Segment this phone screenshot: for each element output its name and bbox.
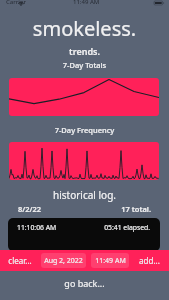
staticText: 8/2/22: [18, 204, 42, 214]
staticText: 11:49 AM: [73, 0, 100, 6]
staticText: 05:41 elapsed.: [104, 223, 150, 232]
staticText: 7-Day Frequency: [0, 125, 169, 135]
button[interactable]: Aug 2, 2022: [41, 253, 86, 268]
staticText: Carrier: [6, 0, 26, 6]
staticText: add...: [139, 255, 160, 266]
staticText: smokeless.: [0, 15, 169, 42]
staticText: 17 total.: [121, 204, 151, 214]
button[interactable]: 11:10:06 AM: [8, 218, 160, 232]
staticText: Aug 2, 2022: [44, 256, 83, 266]
staticText: clear...: [8, 255, 32, 266]
button[interactable]: 11:49 AM: [91, 253, 129, 268]
staticText: 11:10:06 AM: [17, 223, 57, 232]
staticText: trends.: [0, 45, 169, 57]
button[interactable]: add...: [130, 250, 169, 271]
button[interactable]: 7-Day Frequency chart: [9, 142, 159, 180]
staticText: go back...: [64, 277, 105, 289]
button[interactable]: go back...: [0, 274, 169, 292]
button[interactable]: 7-Day Totals chart: [9, 78, 159, 116]
staticText: historical log.: [0, 188, 169, 202]
staticText: 11:49 AM: [95, 256, 126, 266]
button[interactable]: clear...: [0, 250, 40, 271]
staticText: 7-Day Totals: [0, 60, 169, 70]
